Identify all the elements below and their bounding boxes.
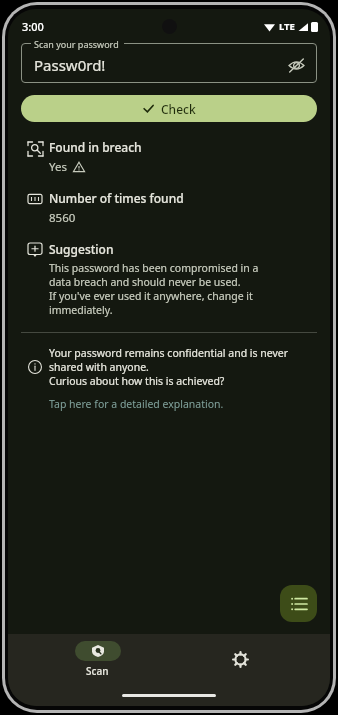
staticText: 8560 [49,210,76,226]
button[interactable]: Tap here for a detailed explanation. [49,397,224,411]
button[interactable]: Settings [169,634,312,684]
staticText: LTE [279,20,295,33]
staticText: Check [161,101,196,117]
staticText: Tap here for a detailed explanation. [49,397,224,411]
staticText: Suggestion [49,241,114,257]
button[interactable]: Scan [26,634,169,684]
button[interactable]: Show password [285,54,307,76]
button[interactable]: Check [21,95,317,122]
staticText: Passw0rd! [34,55,106,75]
staticText: 3:00 [22,19,44,34]
staticText: Scan your password [34,38,119,50]
staticText: Scan [86,664,109,678]
button[interactable]: History [280,585,317,622]
staticText: Found in breach [49,139,142,155]
staticText: This password has been compromised in a … [49,261,259,317]
staticText: Yes [49,159,67,175]
staticText: Your password remains confidential and i… [49,346,289,388]
staticText: Number of times found [49,190,184,206]
